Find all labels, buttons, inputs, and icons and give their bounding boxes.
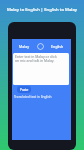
staticText: Translated text in English — [14, 95, 52, 99]
staticText: Malay — [19, 44, 30, 49]
staticText: Enter text in Malay or click on mic and … — [15, 54, 59, 63]
button[interactable]: Paste — [17, 86, 31, 93]
staticText: Malay to English | English to Malay — [0, 7, 84, 13]
staticText: Paste — [20, 88, 29, 92]
button[interactable]: English — [49, 43, 66, 50]
button[interactable]: Malay — [17, 43, 32, 50]
staticText: English — [51, 44, 64, 49]
button[interactable]: Swap languages — [37, 43, 44, 50]
